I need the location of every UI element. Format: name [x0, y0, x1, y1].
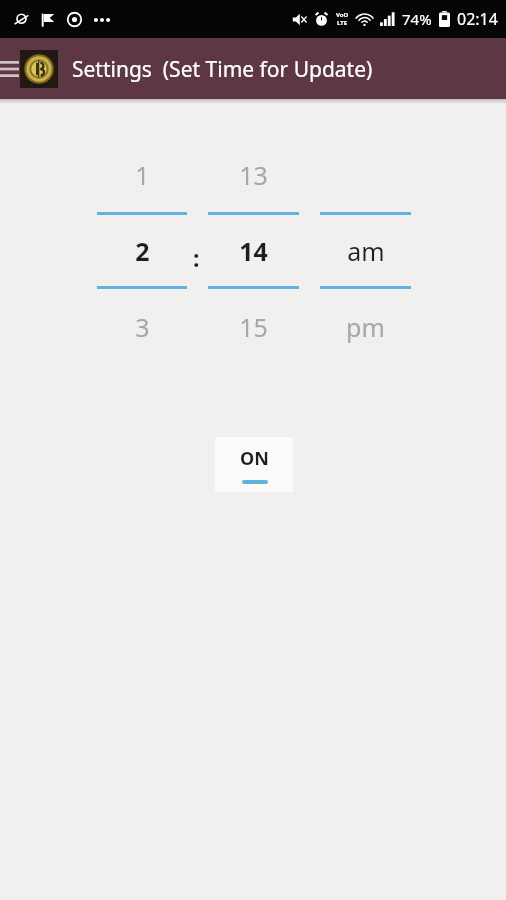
staticText: 74%: [402, 9, 432, 29]
staticText: 2: [135, 234, 150, 268]
staticText: 13: [239, 158, 268, 192]
staticText: 15: [239, 310, 268, 344]
staticText: 14: [239, 234, 268, 268]
staticText: 02:14: [457, 8, 498, 30]
staticText: pm: [346, 310, 385, 344]
button[interactable]: ON: [215, 437, 293, 492]
button[interactable]: am: [320, 137, 411, 364]
staticText: 1: [135, 158, 150, 192]
staticText: ON: [240, 446, 269, 471]
staticText: VoO: [336, 11, 349, 19]
button[interactable]: 13: [208, 137, 299, 364]
staticText: :: [193, 242, 200, 273]
staticText: am: [347, 234, 385, 268]
button[interactable]: 1: [97, 137, 187, 364]
staticText: Settings (Set Time for Update): [72, 55, 373, 84]
button[interactable]: Open navigation menu: [0, 54, 24, 84]
staticText: LTE: [337, 19, 348, 27]
staticText: 3: [135, 310, 150, 344]
